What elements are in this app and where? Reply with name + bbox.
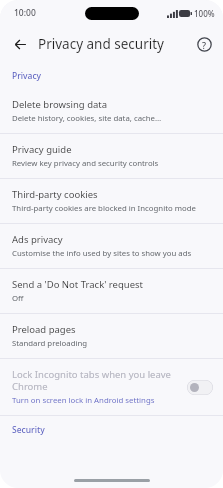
- staticText: Off: [12, 293, 24, 304]
- button[interactable]: Help and feedback: [190, 30, 218, 58]
- staticText: ?: [202, 39, 207, 51]
- button[interactable]: Send a 'Do Not Track' request: [0, 269, 223, 313]
- button[interactable]: Delete browsing data: [0, 89, 223, 133]
- staticText: Review key privacy and security controls: [12, 158, 159, 169]
- button[interactable]: Back: [5, 29, 35, 59]
- button[interactable]: Privacy guide: [0, 134, 223, 178]
- staticText: Privacy: [12, 70, 42, 82]
- button[interactable]: Lock Incognito tabs toggle: [187, 380, 213, 395]
- staticText: Preload pages: [12, 323, 76, 336]
- staticText: Lock Incognito tabs when you leave Chrom…: [12, 368, 181, 393]
- staticText: 10:00: [14, 7, 36, 19]
- staticText: 100%: [194, 8, 215, 19]
- staticText: Ads privacy: [12, 233, 63, 246]
- button[interactable]: Preload pages: [0, 314, 223, 358]
- staticText: Security: [12, 424, 45, 436]
- staticText: Third-party cookies are blocked in Incog…: [12, 203, 196, 214]
- button[interactable]: Lock Incognito tabs when you leave Chrom…: [0, 359, 223, 415]
- staticText: Privacy guide: [12, 143, 72, 156]
- staticText: Privacy and security: [38, 35, 164, 53]
- staticText: Delete browsing data: [12, 98, 108, 111]
- staticText: Send a 'Do Not Track' request: [12, 278, 143, 291]
- staticText: Delete history, cookies, site data, cach…: [12, 113, 162, 124]
- staticText: Standard preloading: [12, 338, 88, 349]
- button[interactable]: Third-party cookies: [0, 179, 223, 223]
- staticText: Third-party cookies: [12, 188, 98, 201]
- button[interactable]: Ads privacy: [0, 224, 223, 268]
- staticText: Turn on screen lock in Android settings: [12, 395, 155, 406]
- staticText: Customise the info used by sites to show…: [12, 248, 192, 259]
